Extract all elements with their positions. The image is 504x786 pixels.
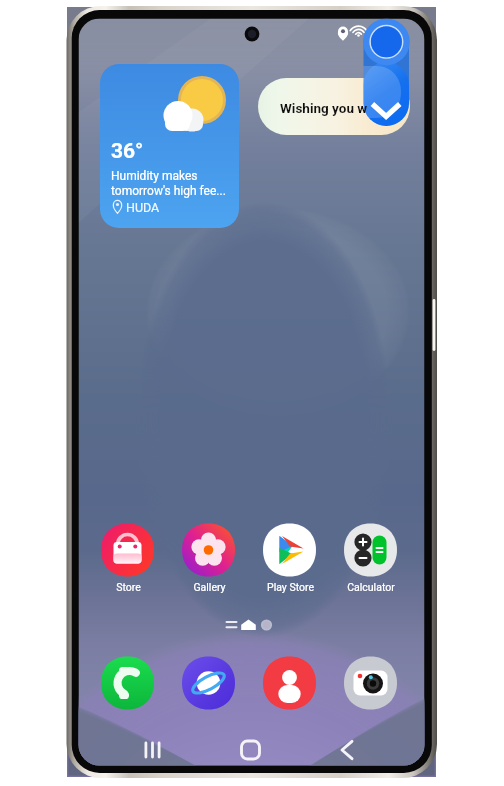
staticText: Calculator bbox=[347, 581, 395, 593]
staticText: 36° bbox=[111, 139, 144, 164]
staticText: HUDA bbox=[126, 200, 160, 215]
staticText: Gallery bbox=[193, 581, 226, 593]
staticText: Wishing you w bbox=[280, 100, 368, 116]
staticText: Store bbox=[116, 581, 141, 593]
staticText: Humidity makes tomorrow's high fee... bbox=[111, 169, 226, 198]
staticText: Play Store bbox=[267, 581, 314, 593]
